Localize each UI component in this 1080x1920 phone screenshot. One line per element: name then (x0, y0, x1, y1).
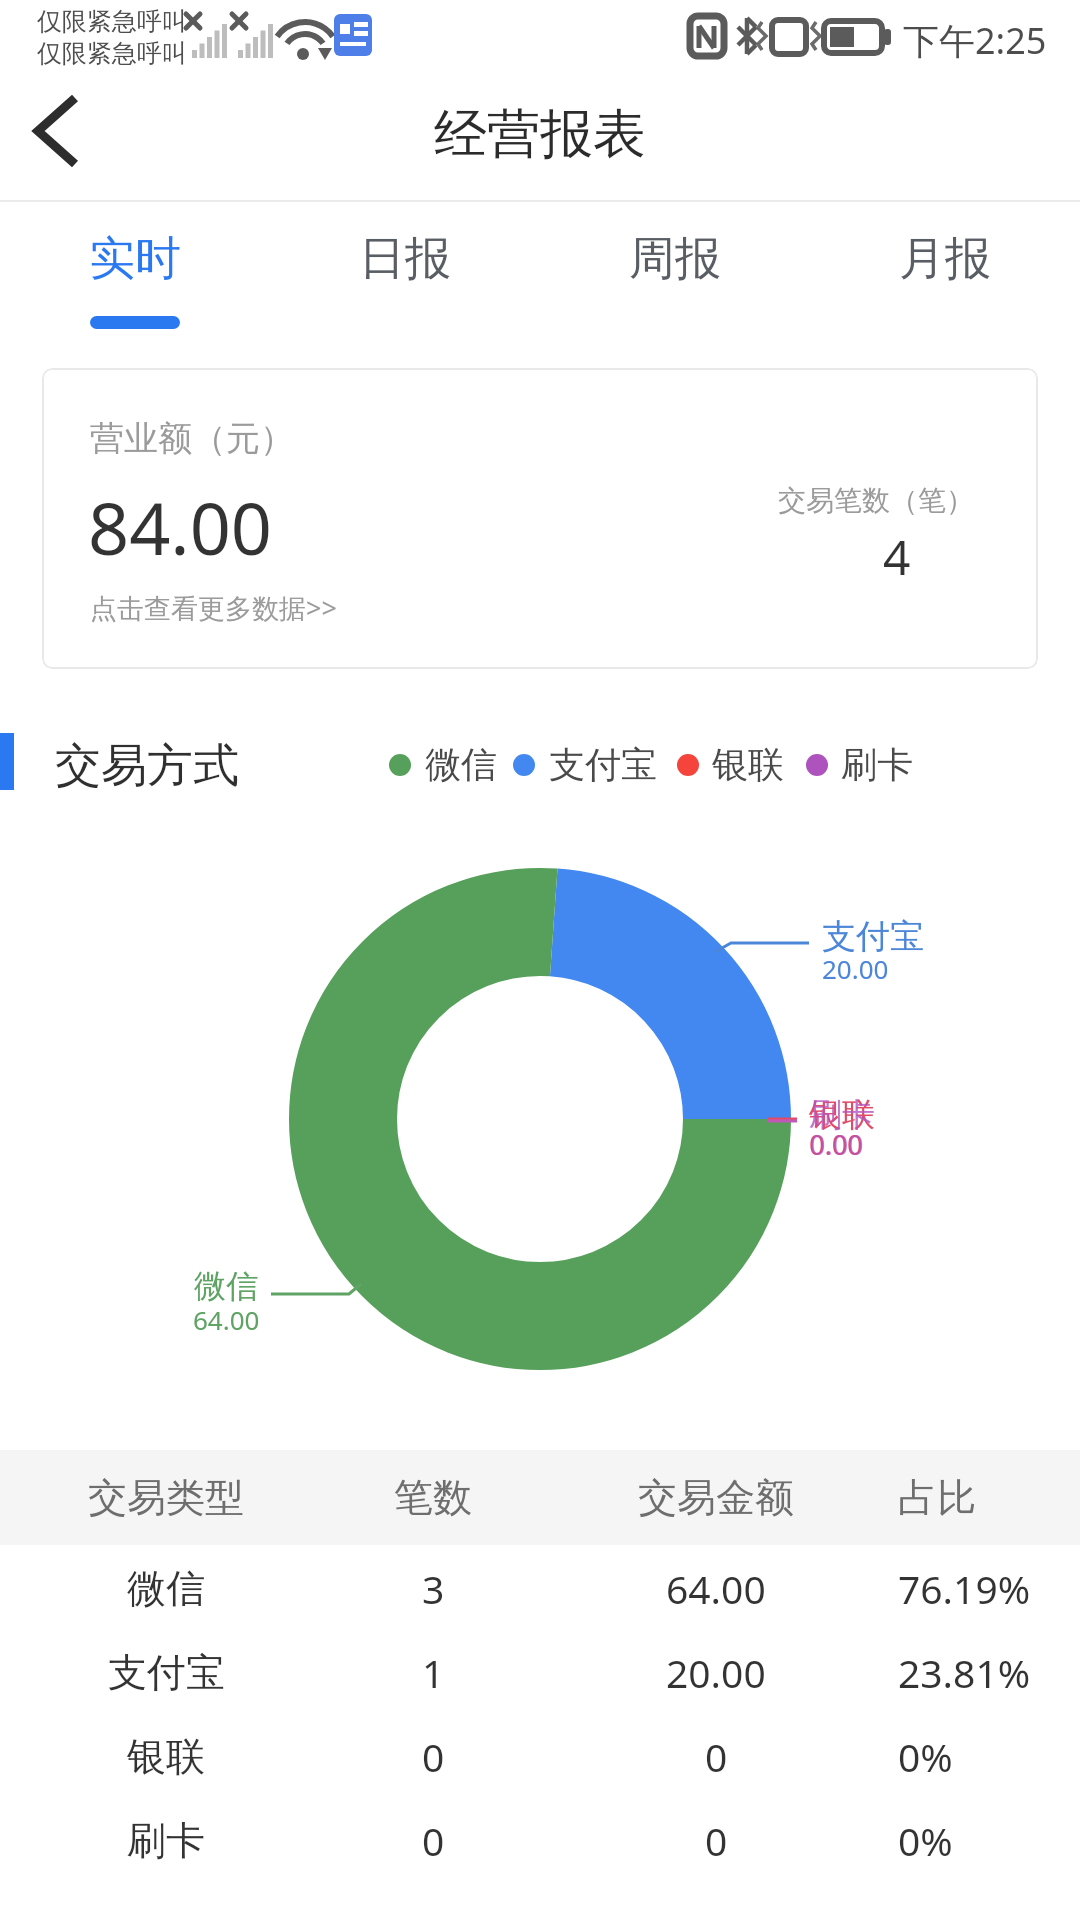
staticText: 3 (422, 1562, 445, 1615)
staticText: 微信 (127, 1564, 205, 1613)
staticText: 笔数 (394, 1473, 472, 1522)
staticText: 仅限紧急呼叫 (37, 6, 187, 37)
staticText: 银联 (127, 1732, 205, 1781)
staticText: 支付宝 (822, 915, 924, 958)
staticText: 支付宝 (549, 742, 657, 787)
button[interactable]: 月报 (810, 209, 1080, 309)
staticText: 0.00 (810, 1126, 864, 1163)
staticText: 占比 (898, 1473, 976, 1522)
staticText: 营业额（元） (90, 417, 294, 460)
staticText: 4 (883, 524, 911, 589)
staticText: 微信 (425, 742, 497, 787)
staticText: 交易类型 (88, 1473, 244, 1522)
staticText: 微信 (194, 1266, 258, 1306)
staticText: 0% (898, 1730, 953, 1783)
staticText: 日报 (359, 230, 451, 288)
staticText: 20.00 (666, 1646, 766, 1699)
staticText: 0% (898, 1814, 953, 1867)
staticText: 实时 (89, 230, 181, 288)
staticText: 64.00 (666, 1562, 766, 1615)
staticText: 0 (705, 1730, 728, 1783)
staticText: 交易方式 (55, 737, 239, 795)
button[interactable] (10, 88, 110, 178)
staticText: 0 (422, 1730, 445, 1783)
staticText: 点击查看更多数据>> (90, 589, 337, 626)
staticText: 20.00 (822, 951, 889, 986)
staticText: 1 (422, 1646, 445, 1699)
staticText: 76.19% (898, 1562, 1031, 1615)
button[interactable]: 营业额（元） (42, 368, 1038, 669)
button[interactable]: 实时 (0, 209, 270, 309)
staticText: 银联 (712, 742, 784, 787)
staticText: 84.00 (88, 478, 273, 576)
staticText: 交易笔数（笔） (778, 483, 974, 518)
staticText: 64.00 (193, 1302, 260, 1337)
staticText: 23.81% (898, 1646, 1031, 1699)
button[interactable]: 日报 (270, 209, 540, 309)
staticText: 仅限紧急呼叫 (37, 38, 187, 69)
staticText: 交易金额 (638, 1473, 794, 1522)
staticText: 周报 (629, 230, 721, 288)
staticText: 0 (422, 1814, 445, 1867)
staticText: 0 (705, 1814, 728, 1867)
staticText: 月报 (899, 230, 991, 288)
button[interactable]: 周报 (540, 209, 810, 309)
staticText: 0.00 (809, 1126, 863, 1163)
staticText: 经营报表 (434, 101, 646, 168)
staticText: 银联 (809, 1094, 875, 1136)
staticText: 刷卡 (127, 1816, 205, 1865)
staticText: 刷卡 (841, 742, 913, 787)
staticText: 支付宝 (108, 1648, 225, 1697)
staticText: 刷卡 (809, 1094, 875, 1136)
staticText: 下午2:25 (903, 16, 1047, 65)
